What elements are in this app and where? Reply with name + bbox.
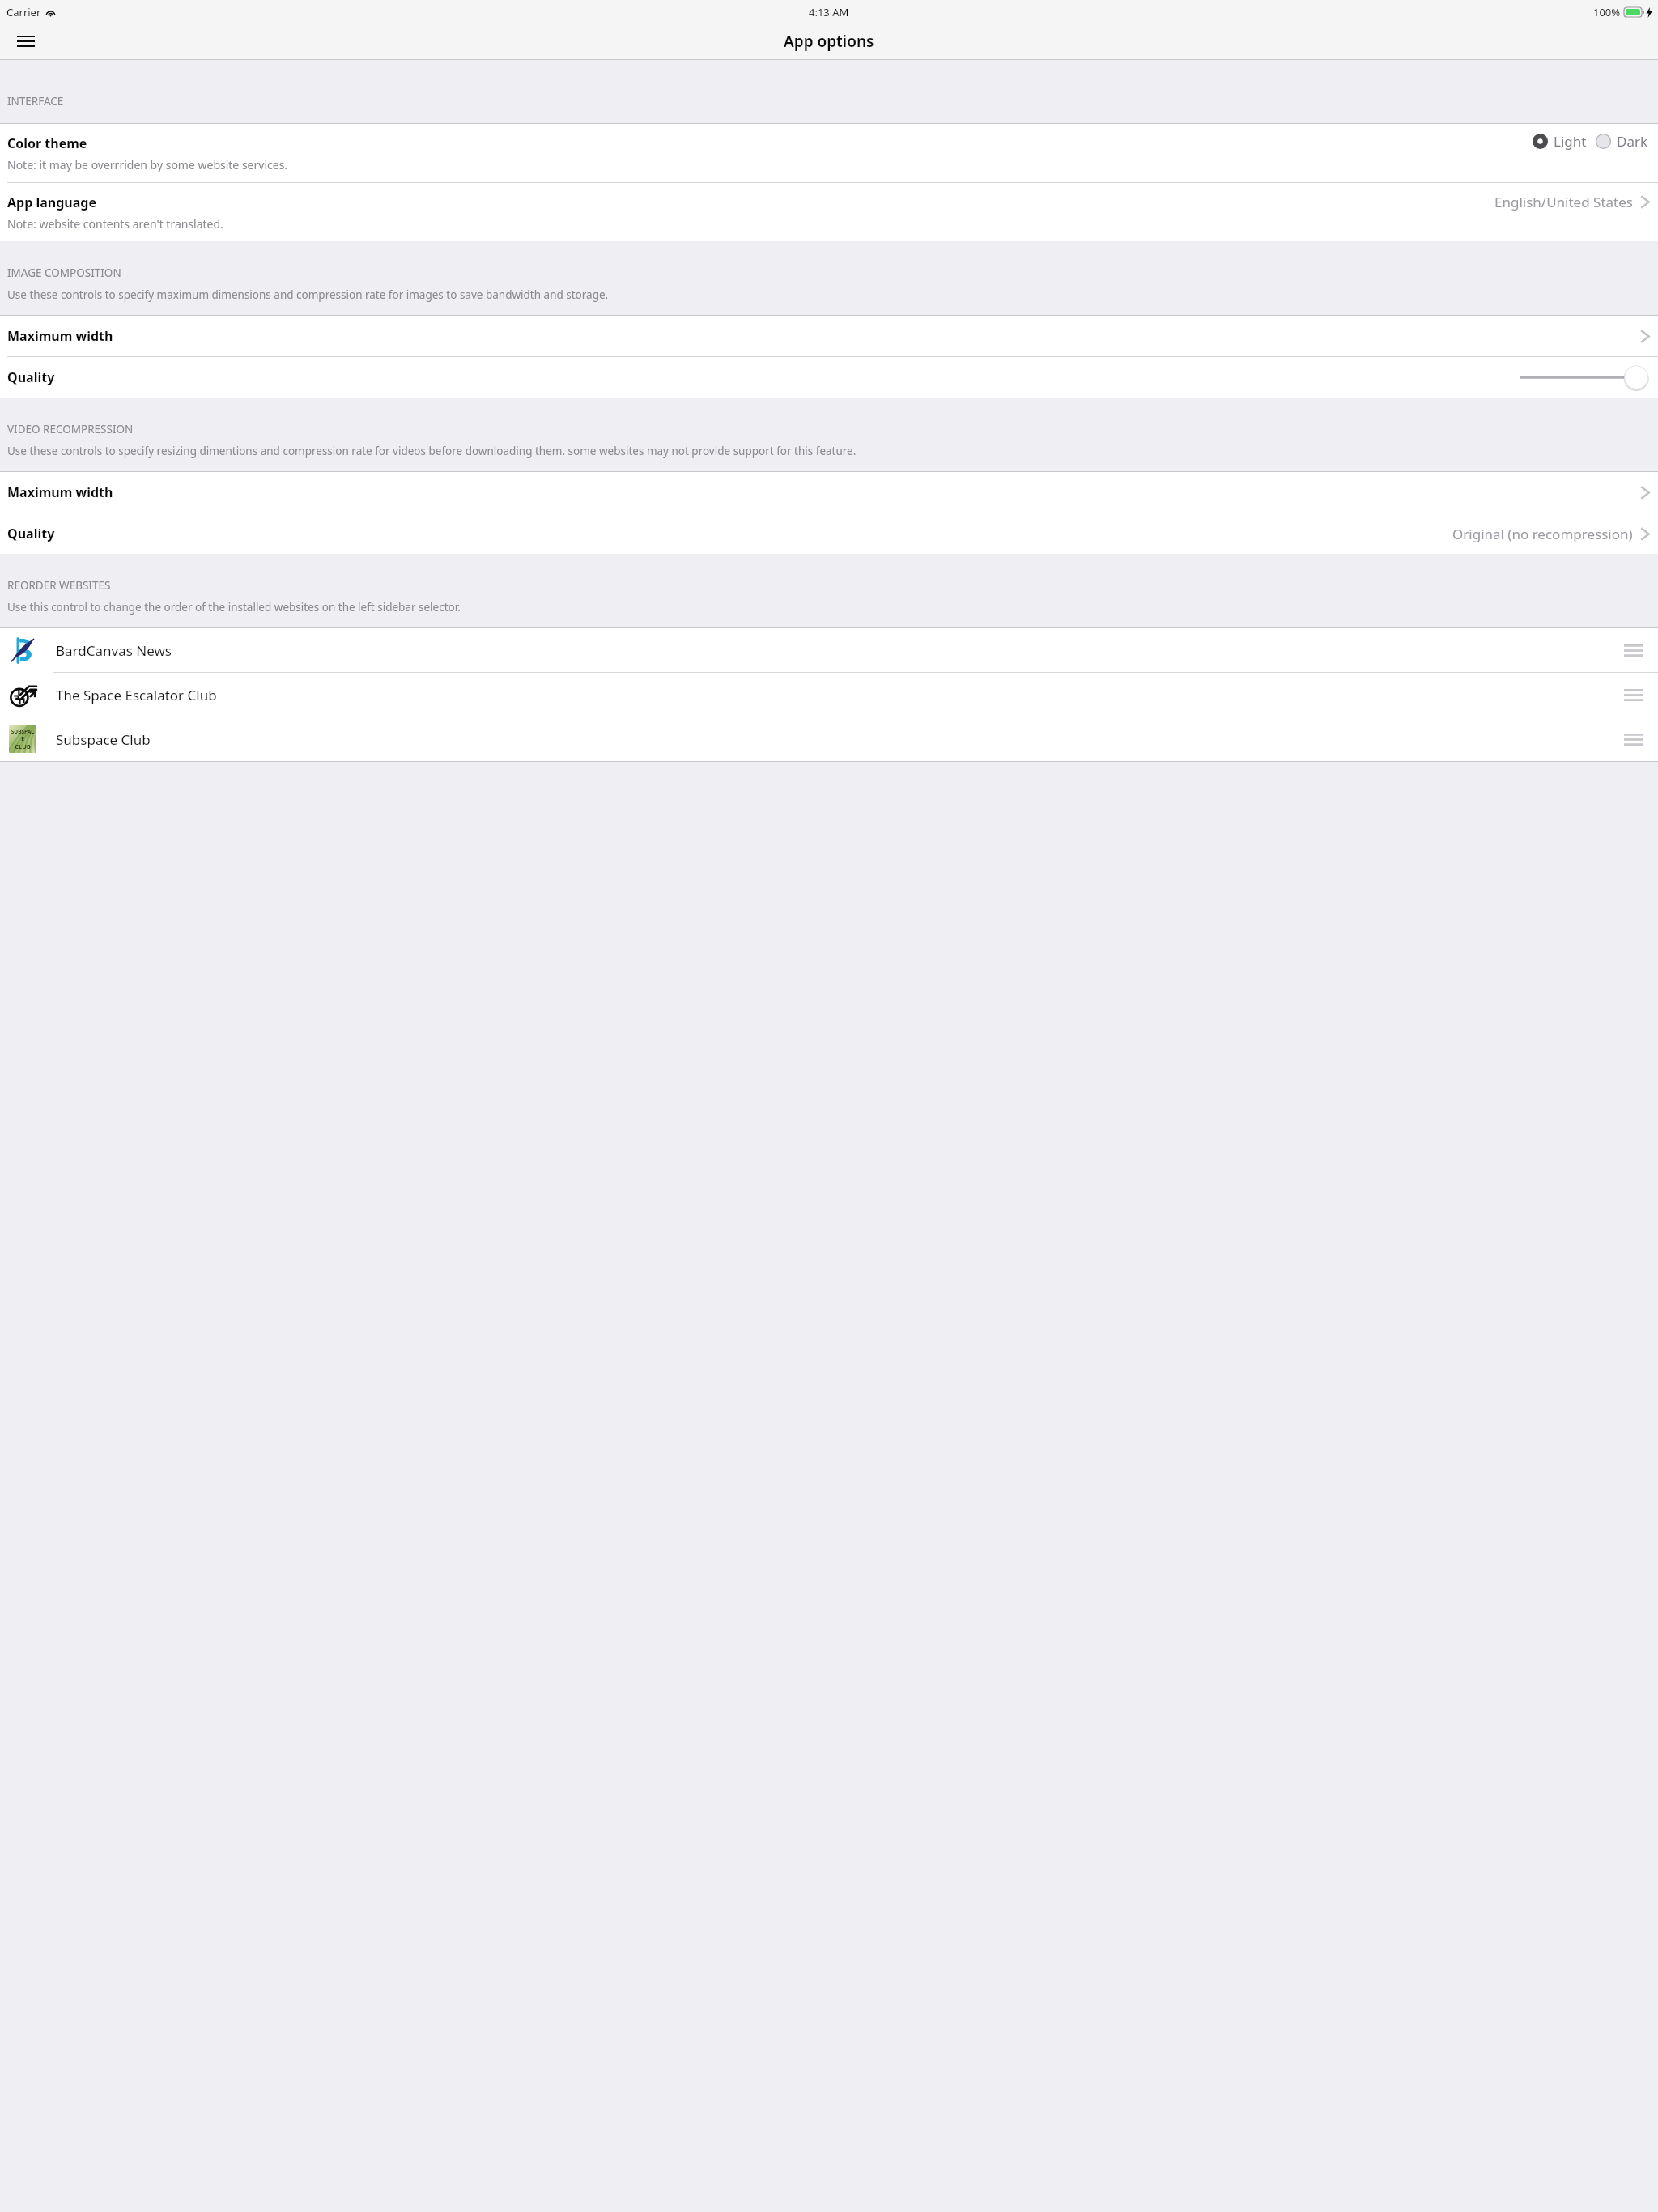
staticText: 100% [1593, 5, 1621, 19]
staticText: Use these controls to specify resizing d… [7, 444, 857, 458]
staticText: The Space Escalator Club [56, 686, 217, 704]
staticText: Use these controls to specify maximum di… [7, 287, 609, 302]
button[interactable]: Quality [0, 357, 1658, 398]
button[interactable]: Reorder The Space Escalator Club [1619, 681, 1647, 708]
staticText: Maximum width [7, 327, 113, 345]
staticText: Note: it may be overrriden by some websi… [7, 157, 288, 172]
button[interactable]: The Space Escalator Club [0, 673, 1658, 717]
button[interactable]: Menu [8, 23, 44, 59]
staticText: Original (no recompression) [1452, 525, 1633, 543]
staticText: Dark [1617, 132, 1648, 151]
staticText: English/United States [1494, 193, 1633, 211]
button[interactable]: Maximum width [0, 472, 1658, 513]
staticText: Color theme [7, 134, 87, 152]
button[interactable]: Color theme [0, 124, 1658, 182]
staticText: 4:13 AM [809, 5, 849, 19]
button[interactable]: Reorder Subspace Club [1619, 725, 1647, 753]
staticText: App language [7, 194, 96, 211]
staticText: Quality [7, 368, 55, 386]
staticText: App options [784, 31, 874, 52]
staticText: INTERFACE [7, 94, 64, 108]
button[interactable]: SUBSPACE [0, 717, 1658, 761]
button[interactable]: App language [0, 183, 1658, 241]
staticText: REORDER WEBSITES [7, 578, 111, 593]
staticText: BardCanvas News [56, 641, 172, 660]
button[interactable]: Light [1533, 132, 1587, 151]
staticText: Light [1554, 132, 1587, 151]
button[interactable]: Reorder BardCanvas News [1619, 636, 1647, 664]
staticText: Carrier [6, 5, 41, 19]
button[interactable]: Dark [1596, 132, 1648, 151]
staticText: Note: website contents aren't translated… [7, 216, 223, 232]
staticText: Quality [7, 525, 55, 542]
other: Quality slider [1520, 361, 1648, 393]
staticText: Subspace Club [56, 730, 151, 749]
staticText: Use this control to change the order of … [7, 600, 461, 615]
staticText: SUBSPACE [10, 728, 36, 742]
staticText: VIDEO RECOMPRESSION [7, 422, 134, 436]
staticText: Maximum width [7, 483, 113, 501]
button[interactable]: Quality [0, 513, 1658, 554]
button[interactable]: Maximum width [0, 316, 1658, 356]
button[interactable]: BardCanvas News [0, 628, 1658, 672]
staticText: CLUB [15, 742, 31, 751]
staticText: IMAGE COMPOSITION [7, 266, 121, 280]
